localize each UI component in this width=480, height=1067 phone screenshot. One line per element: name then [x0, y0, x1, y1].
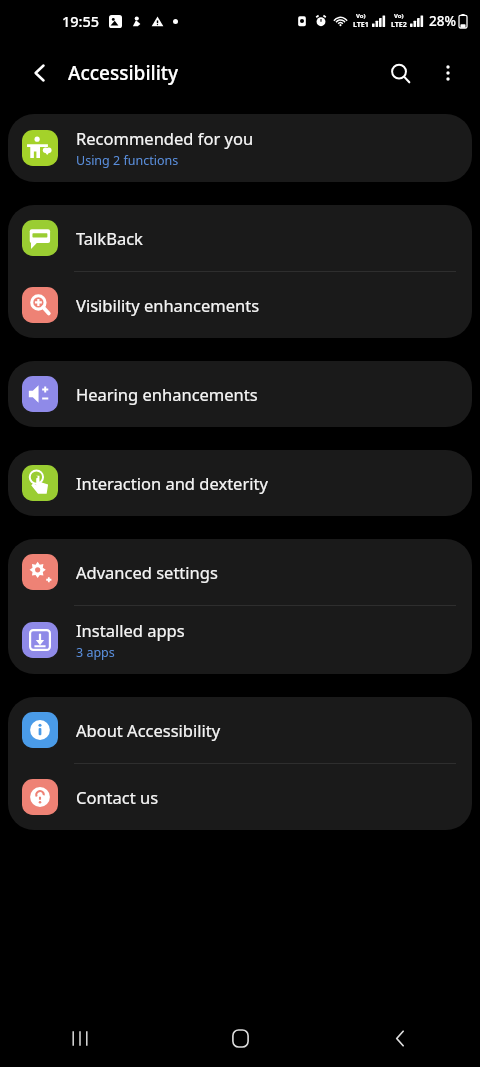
- button[interactable]: Interaction and dexterity: [8, 450, 472, 516]
- other: Installed apps: [22, 622, 58, 658]
- staticText: 3 apps: [76, 644, 115, 661]
- other: Visibility enhancements: [22, 287, 58, 323]
- button[interactable]: Recommended for you: [8, 114, 472, 182]
- staticText: Hearing enhancements: [76, 383, 258, 405]
- other: Advanced settings: [22, 554, 58, 590]
- staticText: 19:55: [62, 11, 100, 31]
- staticText: Installed apps: [76, 619, 185, 641]
- button[interactable]: Back: [16, 49, 64, 97]
- staticText: Vo): [394, 12, 404, 20]
- staticText: 28%: [429, 12, 456, 30]
- other: About Accessibility: [22, 712, 58, 748]
- staticText: LTE1: [353, 20, 369, 30]
- button[interactable]: Search: [376, 49, 424, 97]
- staticText: Recommended for you: [76, 127, 254, 149]
- button[interactable]: More options: [424, 49, 472, 97]
- button[interactable]: Advanced settings: [8, 539, 472, 605]
- staticText: Visibility enhancements: [76, 294, 260, 316]
- button[interactable]: Recent apps: [0, 1009, 160, 1067]
- button[interactable]: About Accessibility: [8, 697, 472, 763]
- other: Recommended for you: [22, 130, 58, 166]
- button[interactable]: TalkBack: [8, 205, 472, 271]
- other: TalkBack: [22, 220, 58, 256]
- other: Interaction and dexterity: [22, 465, 58, 501]
- staticText: Interaction and dexterity: [76, 472, 268, 494]
- staticText: Using 2 functions: [76, 152, 179, 169]
- staticText: About Accessibility: [76, 719, 221, 741]
- button[interactable]: Installed apps: [8, 606, 472, 674]
- other: Contact us: [22, 779, 58, 815]
- button[interactable]: Visibility enhancements: [8, 272, 472, 338]
- button[interactable]: Back: [320, 1009, 480, 1067]
- staticText: Vo): [356, 12, 366, 20]
- staticText: Contact us: [76, 786, 159, 808]
- staticText: TalkBack: [76, 227, 143, 249]
- staticText: Advanced settings: [76, 561, 218, 583]
- other: Hearing enhancements: [22, 376, 58, 412]
- button[interactable]: Contact us: [8, 764, 472, 830]
- staticText: LTE2: [391, 20, 407, 30]
- button[interactable]: Home: [160, 1009, 320, 1067]
- staticText: Accessibility: [68, 60, 179, 86]
- button[interactable]: Hearing enhancements: [8, 361, 472, 427]
